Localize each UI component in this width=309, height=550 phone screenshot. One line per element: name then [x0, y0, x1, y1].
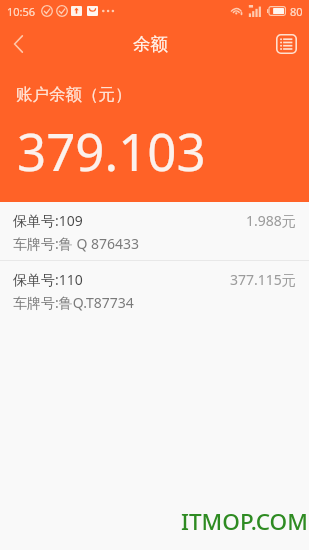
staticText: 账户余额（元） [16, 84, 132, 105]
staticText: 车牌号:鲁 Q 876433 [13, 234, 140, 253]
button[interactable]: 保单号:109 [0, 202, 309, 260]
button[interactable]: Back [0, 22, 36, 66]
staticText: 余额 [133, 33, 168, 55]
button[interactable]: Records [263, 22, 309, 66]
staticText: ITMOP.COM [181, 506, 308, 537]
staticText: 1.988元 [246, 211, 296, 230]
staticText: 379.103 [17, 116, 206, 185]
button[interactable]: 保单号:110 [0, 261, 309, 319]
staticText: 377.115元 [230, 270, 296, 289]
staticText: 保单号:110 [13, 270, 83, 289]
staticText: 80 [290, 4, 303, 19]
staticText: 10:56 [7, 4, 36, 19]
staticText: 保单号:109 [13, 211, 83, 230]
staticText: 车牌号:鲁Q.T87734 [13, 293, 134, 312]
